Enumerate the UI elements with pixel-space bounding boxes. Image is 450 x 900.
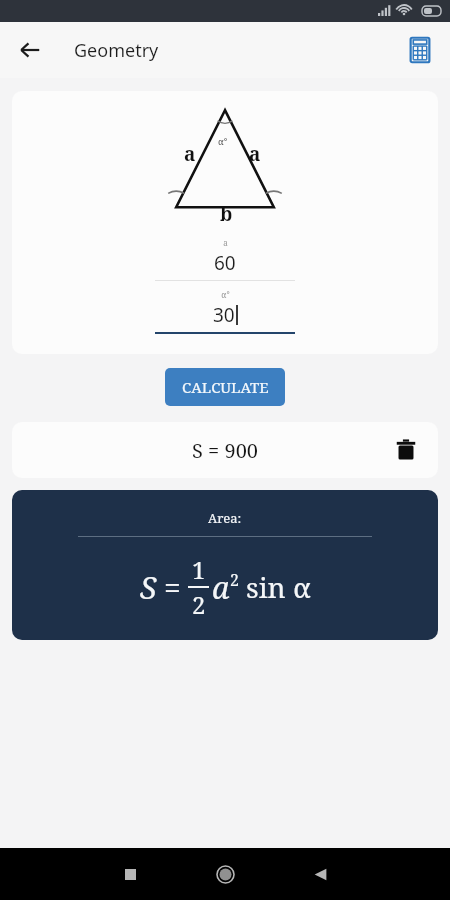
staticText: a — [223, 237, 228, 248]
staticText: α° — [221, 289, 230, 300]
button[interactable]: Back — [8, 28, 52, 72]
staticText: 2 — [192, 588, 206, 621]
staticText: 60 — [214, 250, 236, 276]
staticText: S = — [140, 567, 181, 608]
staticText: a — [184, 141, 196, 167]
staticText: 2 — [230, 569, 239, 591]
button[interactable]: Recent apps — [110, 854, 150, 894]
staticText: b — [220, 201, 233, 227]
staticText: S = 900 — [192, 437, 258, 464]
staticText: a — [249, 141, 261, 167]
button[interactable]: Back — [300, 854, 340, 894]
button[interactable]: a — [12, 237, 438, 287]
staticText: CALCULATE — [182, 377, 269, 397]
button[interactable]: S = 900 — [12, 422, 438, 478]
staticText: 30 — [213, 302, 235, 328]
staticText: a — [212, 567, 230, 608]
button[interactable]: Delete result — [388, 432, 424, 468]
button[interactable]: α° — [12, 289, 438, 339]
staticText: sin α — [246, 568, 311, 606]
button[interactable]: CALCULATE — [165, 368, 285, 406]
staticText: Geometry — [74, 38, 159, 63]
button[interactable]: Home — [203, 852, 247, 896]
staticText: 1 — [192, 553, 206, 586]
staticText: α° — [218, 135, 228, 147]
staticText: Area: — [208, 509, 242, 527]
button[interactable]: Calculator — [400, 30, 440, 70]
